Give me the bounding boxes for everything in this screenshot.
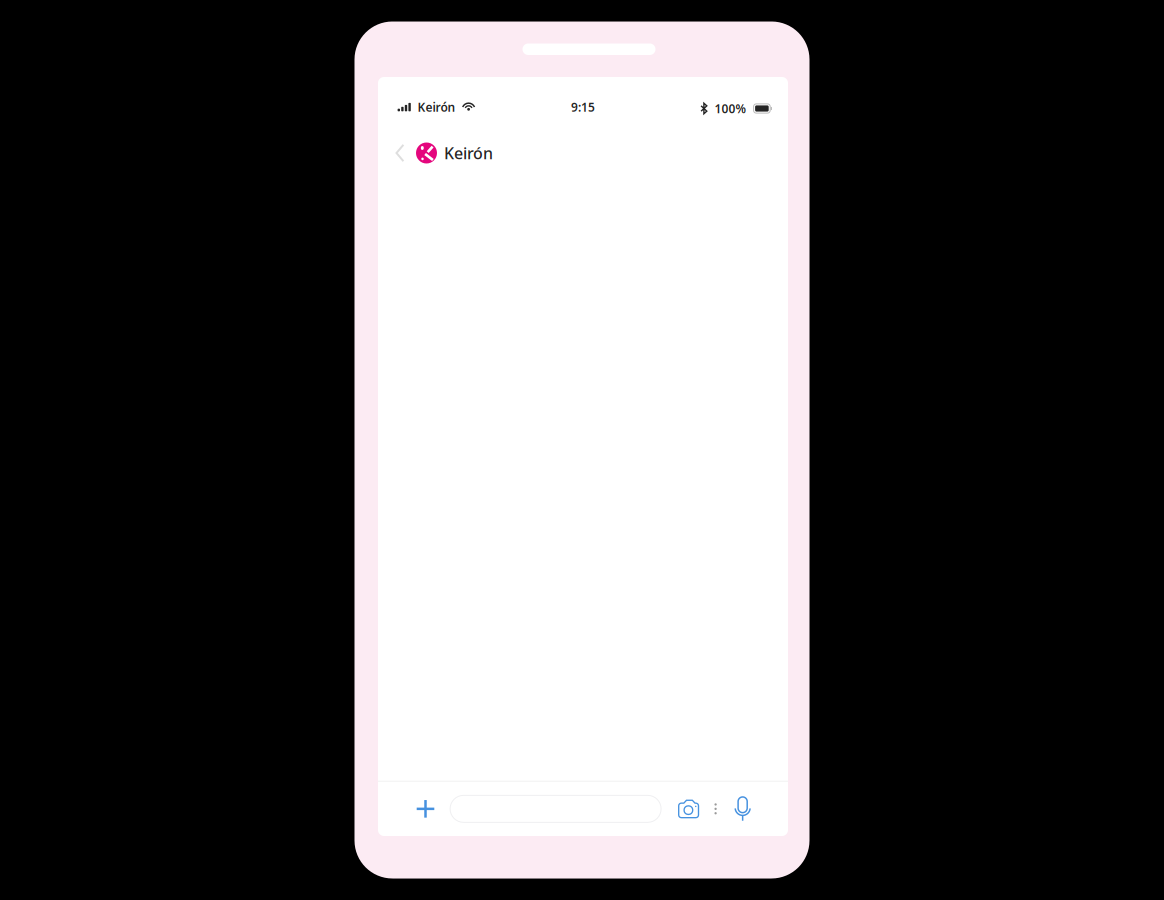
button[interactable]: Keirón (416, 135, 493, 171)
button[interactable]: Message (450, 792, 661, 826)
staticText: 9:15 (571, 99, 595, 115)
button[interactable]: Camera (674, 792, 703, 826)
button[interactable]: Back (384, 135, 416, 171)
staticText: Keirón (444, 142, 493, 164)
button[interactable]: Dictate (730, 792, 755, 826)
button[interactable]: Add attachment (411, 792, 440, 826)
button[interactable]: More options (707, 792, 725, 826)
staticText: 100% (715, 100, 747, 116)
staticText: Keirón (417, 99, 455, 115)
